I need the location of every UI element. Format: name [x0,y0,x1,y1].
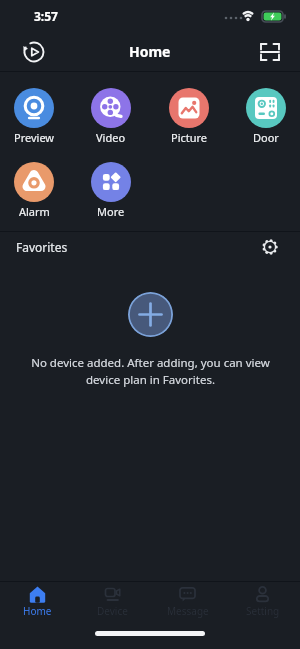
button[interactable]: Home [0,582,75,629]
staticText: More [97,204,125,219]
staticText: 3:57 [34,8,58,24]
staticText: Device [97,604,128,618]
button[interactable]: More [83,162,139,219]
staticText: Home [23,604,52,618]
staticText: Alarm [19,204,50,219]
staticText: Door [253,130,279,145]
button[interactable]: Alarm [6,162,62,219]
button[interactable] [22,40,46,64]
staticText: Preview [14,130,55,145]
button[interactable]: Preview [6,88,62,145]
button[interactable]: Video [83,88,139,145]
staticText: Home [129,42,171,61]
button[interactable]: Message [150,582,225,629]
button[interactable] [261,238,279,256]
staticText: Message [167,604,209,618]
button[interactable]: Door [238,88,294,145]
staticText: Video [96,130,126,145]
staticText: Setting [246,604,280,618]
staticText: Favorites [16,239,68,255]
button[interactable]: Device [75,582,150,629]
button[interactable]: Picture [161,88,217,145]
button[interactable] [128,292,173,337]
staticText: No device added. After adding, you can v… [31,355,270,387]
button[interactable] [258,40,282,64]
button[interactable]: Setting [225,582,300,629]
staticText: Picture [171,130,208,145]
